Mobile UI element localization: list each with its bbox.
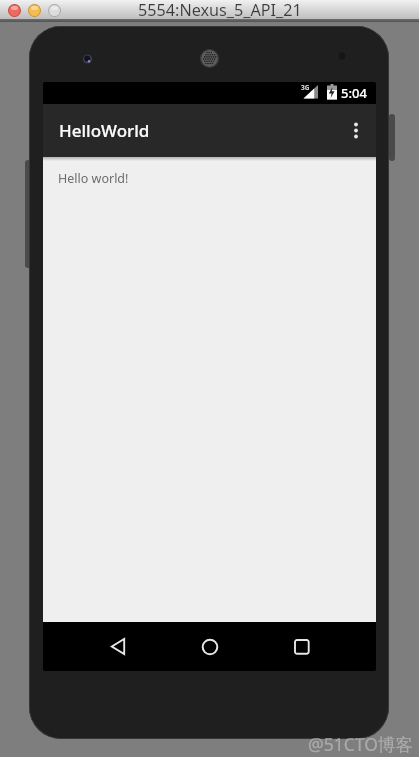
staticText: @51CTO博客 (308, 732, 413, 756)
button[interactable] (336, 104, 376, 157)
staticText: 5:04 (341, 84, 367, 102)
staticText: HelloWorld (59, 119, 150, 142)
button[interactable] (281, 626, 322, 667)
staticText: 5554:Nexus_5_API_21 (138, 0, 302, 21)
staticText: 3G (301, 83, 310, 92)
button[interactable] (97, 626, 138, 667)
button[interactable] (48, 4, 61, 17)
button[interactable] (28, 4, 41, 17)
button[interactable] (189, 626, 230, 667)
button[interactable] (8, 4, 21, 17)
staticText: Hello world! (58, 170, 129, 187)
